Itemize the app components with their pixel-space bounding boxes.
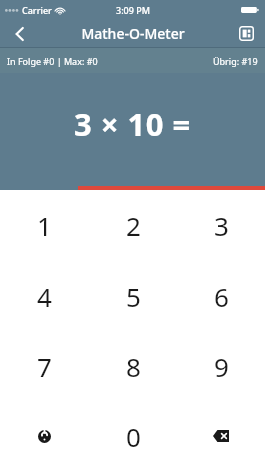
button[interactable]: 2 <box>89 190 177 261</box>
button[interactable]: 6 <box>177 261 265 331</box>
button[interactable]: Backspace <box>177 401 265 471</box>
button[interactable]: 3 <box>177 190 265 261</box>
staticText: 8 <box>126 349 141 384</box>
staticText: Mathe-O-Meter <box>81 24 185 43</box>
staticText: 3 × 10 = <box>74 103 191 145</box>
staticText: Carrier <box>22 4 52 16</box>
button[interactable]: 0 <box>89 401 177 471</box>
staticText: Übrig: #19 <box>213 55 258 67</box>
button[interactable]: 7 <box>0 331 89 401</box>
staticText: 3:09 PM <box>116 4 150 16</box>
staticText: 2 <box>126 208 141 243</box>
button[interactable]: 4 <box>0 261 89 331</box>
staticText: 3 <box>214 208 229 243</box>
staticText: 9 <box>214 349 229 384</box>
button[interactable]: 5 <box>89 261 177 331</box>
button[interactable]: Statistics <box>227 20 265 47</box>
button[interactable]: Back <box>0 20 40 47</box>
button[interactable]: 1 <box>0 190 89 261</box>
staticText: In Folge #0 | Max: #0 <box>7 55 98 67</box>
staticText: 1 <box>37 208 52 243</box>
button[interactable]: 8 <box>89 331 177 401</box>
button[interactable]: 9 <box>177 331 265 401</box>
button[interactable]: Help <box>0 401 89 471</box>
staticText: 7 <box>37 349 52 384</box>
staticText: 6 <box>214 279 229 314</box>
staticText: 5 <box>126 279 141 314</box>
staticText: 4 <box>37 279 52 314</box>
staticText: 0 <box>126 419 141 454</box>
